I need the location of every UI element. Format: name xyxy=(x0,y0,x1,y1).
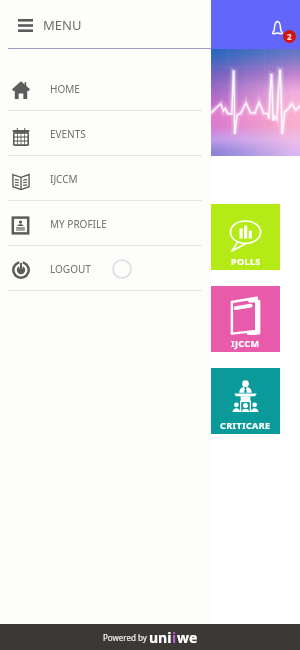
button[interactable]: Open navigation menu xyxy=(14,14,36,36)
button[interactable]: POLLS xyxy=(211,204,280,270)
staticText: LOGOUT xyxy=(50,262,91,276)
staticText: we xyxy=(177,628,198,647)
button[interactable]: HOME xyxy=(0,66,211,111)
button[interactable]: IJCCM xyxy=(211,286,280,352)
staticText: uni xyxy=(149,628,172,647)
staticText: 2 xyxy=(287,31,292,42)
staticText: POLLS xyxy=(231,255,261,267)
staticText: HOME xyxy=(50,82,80,96)
button[interactable]: LOGOUT xyxy=(0,246,211,291)
staticText: IJCCM xyxy=(50,172,78,186)
button[interactable]: CRITICARE xyxy=(211,368,280,434)
staticText: IJCCM xyxy=(231,337,260,349)
staticText: CRITICARE xyxy=(220,419,271,431)
button[interactable]: IJCCM xyxy=(0,156,211,201)
staticText: EVENTS xyxy=(50,127,86,141)
button[interactable]: MY PROFILE xyxy=(0,201,211,246)
staticText: Powered by xyxy=(103,632,149,643)
staticText: MY PROFILE xyxy=(50,217,107,231)
button[interactable]: Notifications xyxy=(266,0,300,46)
button[interactable]: EVENTS xyxy=(0,111,211,156)
staticText: i xyxy=(172,628,177,647)
staticText: MENU xyxy=(43,16,82,34)
